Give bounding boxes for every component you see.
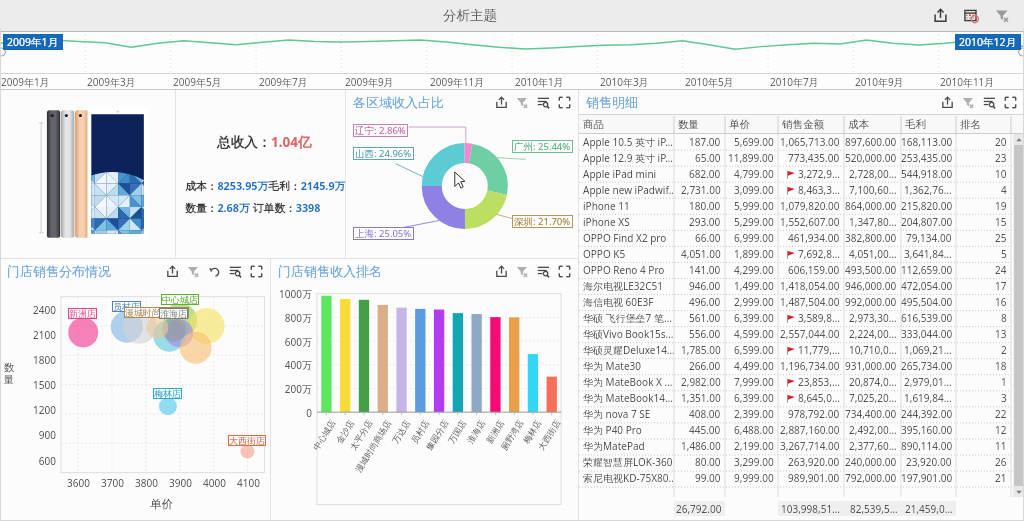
button[interactable]: 上海: 25.05%: [355, 227, 412, 240]
staticText: 2010年5月: [685, 75, 734, 89]
button[interactable]: 全屏: [246, 263, 267, 280]
button[interactable]: 漫城时尚商场店: [125, 307, 188, 318]
staticText: 4,599.00: [734, 327, 774, 341]
staticText: 6,599.00: [734, 343, 774, 357]
staticText: 544,918.00: [901, 167, 952, 181]
staticText: 华为 nova 7 SE: [583, 407, 651, 421]
button[interactable]: 山西: 24.96%: [355, 147, 412, 160]
staticText: 12: [995, 423, 1007, 437]
button[interactable]: 筛选: [512, 94, 533, 111]
staticText: 2009年3月: [87, 75, 136, 89]
staticText: 616,539.00: [901, 311, 952, 325]
button[interactable]: 筛选: [987, 4, 1018, 27]
button[interactable]: 全屏: [554, 94, 575, 111]
staticText: 800万: [271, 311, 312, 325]
staticText: 890,114.00: [901, 439, 952, 453]
button[interactable]: 大西街店: [229, 435, 265, 446]
button[interactable]: 梅林店: [154, 388, 181, 399]
staticText: 2010年11月: [940, 75, 995, 89]
staticText: 总收入：1.04亿: [217, 133, 312, 151]
staticText: 1,069,21…: [904, 343, 952, 357]
button[interactable]: 中心城店: [162, 294, 198, 305]
staticText: 毛利: [905, 118, 926, 131]
staticText: 1,351.00: [681, 391, 721, 405]
button[interactable]: 导出: [491, 94, 512, 111]
staticText: 7,999.00: [734, 375, 774, 389]
staticText: 180.00: [689, 199, 721, 213]
button[interactable]: 排序: [225, 263, 246, 280]
staticText: 员村店: [409, 418, 432, 446]
button[interactable]: 员村店: [113, 301, 140, 312]
button[interactable]: 2009年1月: [7, 35, 59, 49]
staticText: 3900: [169, 476, 192, 490]
staticText: 8: [1001, 311, 1007, 325]
button[interactable]: 全屏: [1000, 94, 1021, 111]
button[interactable]: 定时: [956, 4, 987, 27]
staticText: 1,418,054.00: [780, 279, 840, 293]
button[interactable]: 导出: [925, 4, 956, 27]
staticText: 华硕Vivo Book15s…: [583, 327, 674, 341]
button[interactable]: 向上滚动: [1013, 134, 1024, 145]
staticText: 梅林店: [154, 388, 181, 399]
button[interactable]: 筛选: [512, 263, 533, 280]
staticText: 79,134.00: [906, 231, 952, 245]
staticText: 989,901.00: [788, 471, 840, 485]
staticText: 索尼电视KD-75X80…: [583, 471, 674, 485]
staticText: 7,100,60…: [849, 183, 897, 197]
staticText: 112,659.00: [901, 263, 952, 277]
staticText: 734,400.00: [845, 407, 897, 421]
button[interactable]: 新洲店: [69, 308, 96, 319]
staticText: 400万: [271, 358, 312, 372]
button[interactable]: 深圳: 21.70%: [514, 215, 571, 228]
button[interactable]: 导出: [162, 263, 183, 280]
button[interactable]: 导出: [937, 94, 958, 111]
staticText: 1500: [0, 378, 56, 392]
staticText: 2100: [0, 328, 56, 342]
staticText: 海尔电视LE32C51: [583, 279, 663, 293]
button[interactable]: 排序: [979, 94, 1000, 111]
staticText: 23,853,…: [798, 375, 840, 389]
staticText: 864,000.00: [845, 199, 897, 213]
button[interactable]: 淮海店: [160, 308, 187, 319]
staticText: Apple new iPadwif…: [583, 183, 674, 197]
staticText: 广州: 25.44%: [514, 140, 571, 153]
button[interactable]: 辽宁: 2.86%: [355, 124, 406, 137]
staticText: 4000: [203, 476, 226, 490]
button[interactable]: 撤销: [204, 263, 225, 280]
staticText: 2010年1月: [515, 75, 564, 89]
staticText: 187.00: [689, 135, 721, 149]
staticText: 293.00: [689, 215, 721, 229]
staticText: iPhone XS: [583, 215, 630, 229]
staticText: 80.00: [695, 455, 721, 469]
staticText: 4,799.00: [734, 167, 774, 181]
staticText: 493,500.00: [845, 263, 897, 277]
staticText: 2,979,01…: [904, 375, 952, 389]
staticText: 8,645,0…: [798, 391, 840, 405]
button[interactable]: 向下滚动: [1013, 486, 1024, 497]
staticText: 792,000.00: [845, 471, 897, 485]
button[interactable]: 排序: [533, 94, 554, 111]
button[interactable]: 2010年12月: [959, 35, 1017, 49]
staticText: 6,999.00: [734, 231, 774, 245]
button[interactable]: 筛选: [183, 263, 204, 280]
staticText: 3700: [101, 476, 124, 490]
staticText: 万国店: [446, 418, 469, 446]
button[interactable]: 广州: 25.44%: [514, 140, 571, 153]
button[interactable]: 全屏: [554, 263, 575, 280]
staticText: 19: [995, 199, 1007, 213]
staticText: 4,051,00…: [849, 247, 897, 261]
staticText: 大西街店: [536, 418, 563, 453]
staticText: 26: [995, 455, 1007, 469]
staticText: 6,399.00: [734, 391, 774, 405]
staticText: OPPO K5: [583, 247, 626, 261]
button[interactable]: 筛选: [958, 94, 979, 111]
staticText: 2010年3月: [600, 75, 649, 89]
staticText: 1,347,80…: [849, 215, 897, 229]
button[interactable]: 排序: [533, 263, 554, 280]
staticText: 排名: [960, 118, 981, 131]
staticText: 2010年12月: [959, 35, 1017, 49]
button[interactable]: 导出: [491, 263, 512, 280]
staticText: 新洲店: [69, 308, 96, 319]
staticText: 上海: 25.05%: [355, 227, 412, 240]
staticText: 7,025,20…: [849, 391, 897, 405]
